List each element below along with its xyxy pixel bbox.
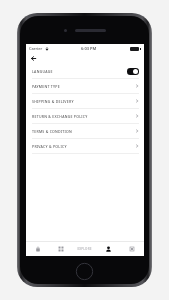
button[interactable]: Explore: [72, 242, 96, 256]
button[interactable]: Home: [75, 262, 94, 281]
staticText: Carrier: [29, 46, 43, 51]
button[interactable]: TERMS & CONDITION: [26, 124, 144, 139]
staticText: PRIVACY & POLICY: [32, 144, 67, 149]
staticText: LANGUAGE: [32, 69, 53, 74]
button[interactable]: PRIVACY & POLICY: [26, 139, 144, 154]
button[interactable]: Shop: [26, 242, 49, 256]
button[interactable]: Cart: [120, 242, 144, 256]
staticText: PAYMENT TYPE: [32, 84, 60, 89]
staticText: TERMS & CONDITION: [32, 129, 72, 134]
staticText: EXPLORE: [77, 247, 92, 251]
button[interactable]: RETURN & EXCHANGE POLICY: [26, 109, 144, 124]
button[interactable]: PAYMENT TYPE: [26, 79, 144, 94]
staticText: SHIPPING & DELIVERY: [32, 99, 74, 104]
button[interactable]: Language toggle: [127, 68, 139, 75]
button[interactable]: Back: [29, 54, 38, 63]
staticText: RETURN & EXCHANGE POLICY: [32, 114, 88, 119]
button[interactable]: LANGUAGE: [26, 64, 144, 79]
staticText: 6:03 PM: [81, 46, 97, 51]
button[interactable]: Categories: [49, 242, 72, 256]
button[interactable]: SHIPPING & DELIVERY: [26, 94, 144, 109]
button[interactable]: Profile: [96, 242, 120, 256]
